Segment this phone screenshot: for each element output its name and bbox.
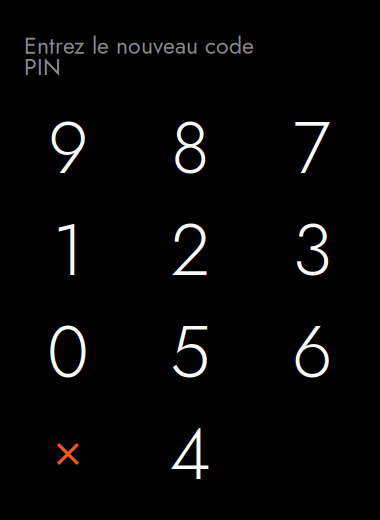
button[interactable]: 6 [251,301,373,403]
button[interactable]: 4 [129,403,251,505]
staticText: 0 [47,300,89,404]
button[interactable]: 2 [129,199,251,301]
button[interactable]: 9 [7,97,129,199]
staticText: 3 [292,198,331,302]
button[interactable]: 3 [251,199,373,301]
staticText: 9 [48,96,88,200]
staticText: 6 [292,300,332,404]
button[interactable]: 0 [7,301,129,403]
staticText: Entrez le nouveau code PIN [24,35,254,78]
staticText: 7 [293,96,331,200]
staticText: 2 [170,198,209,302]
button[interactable]: 7 [251,97,373,199]
staticText: 8 [171,96,209,200]
button[interactable]: Delete [7,403,129,505]
staticText: 1 [52,198,83,302]
button[interactable]: 5 [129,301,251,403]
button[interactable]: 1 [7,199,129,301]
staticText: 5 [170,300,210,404]
staticText: 4 [169,402,210,506]
button[interactable]: 8 [129,97,251,199]
